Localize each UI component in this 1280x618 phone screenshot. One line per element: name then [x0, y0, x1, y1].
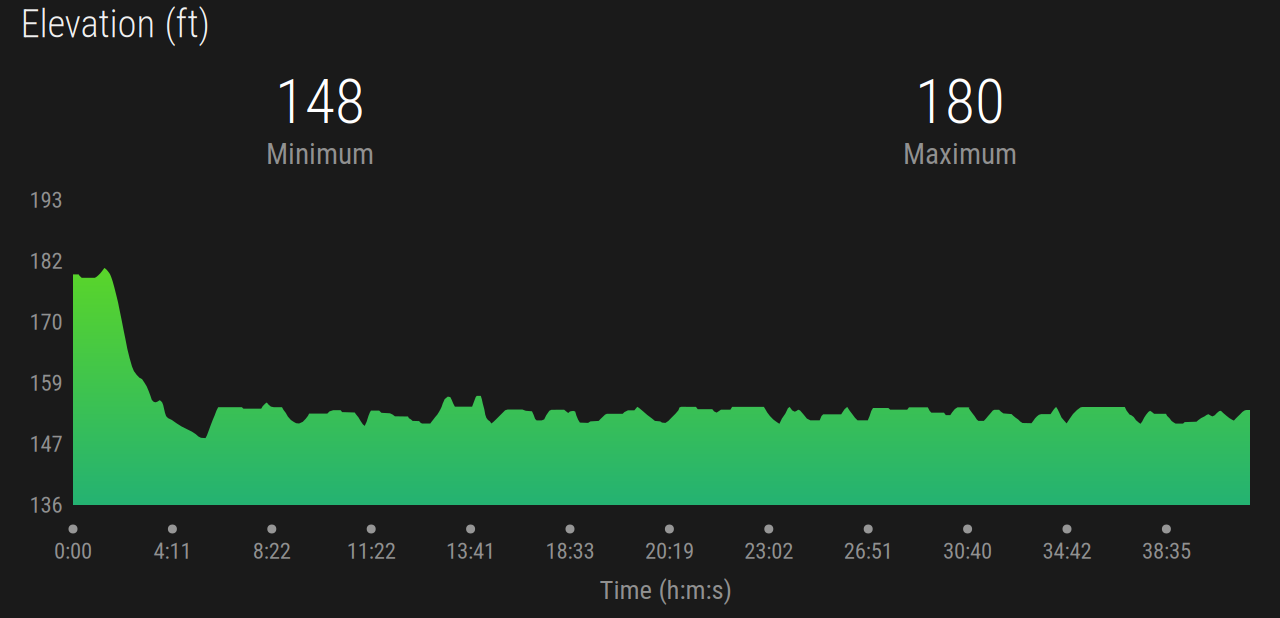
staticText: 147 [29, 431, 62, 457]
staticText: Elevation (ft) [20, 1, 209, 47]
staticText: 182 [29, 248, 62, 274]
staticText: Time (h:m:s) [599, 574, 732, 606]
staticText: 30:40 [943, 538, 992, 564]
staticText: 193 [29, 187, 62, 213]
staticText: 136 [29, 492, 62, 518]
staticText: 34:42 [1042, 538, 1091, 564]
staticText: Maximum [903, 137, 1017, 171]
staticText: 20:19 [645, 538, 694, 564]
staticText: 4:11 [153, 538, 191, 564]
staticText: 170 [29, 309, 62, 335]
staticText: 8:22 [253, 538, 291, 564]
staticText: 26:51 [844, 538, 893, 564]
staticText: 18:33 [545, 538, 594, 564]
staticText: 148 [275, 66, 365, 138]
staticText: 13:41 [446, 538, 495, 564]
staticText: 0:00 [54, 538, 92, 564]
staticText: 23:02 [744, 538, 793, 564]
staticText: Minimum [266, 137, 374, 171]
staticText: 159 [29, 370, 62, 396]
staticText: 38:35 [1142, 538, 1191, 564]
staticText: 11:22 [347, 538, 396, 564]
staticText: 180 [915, 66, 1005, 138]
